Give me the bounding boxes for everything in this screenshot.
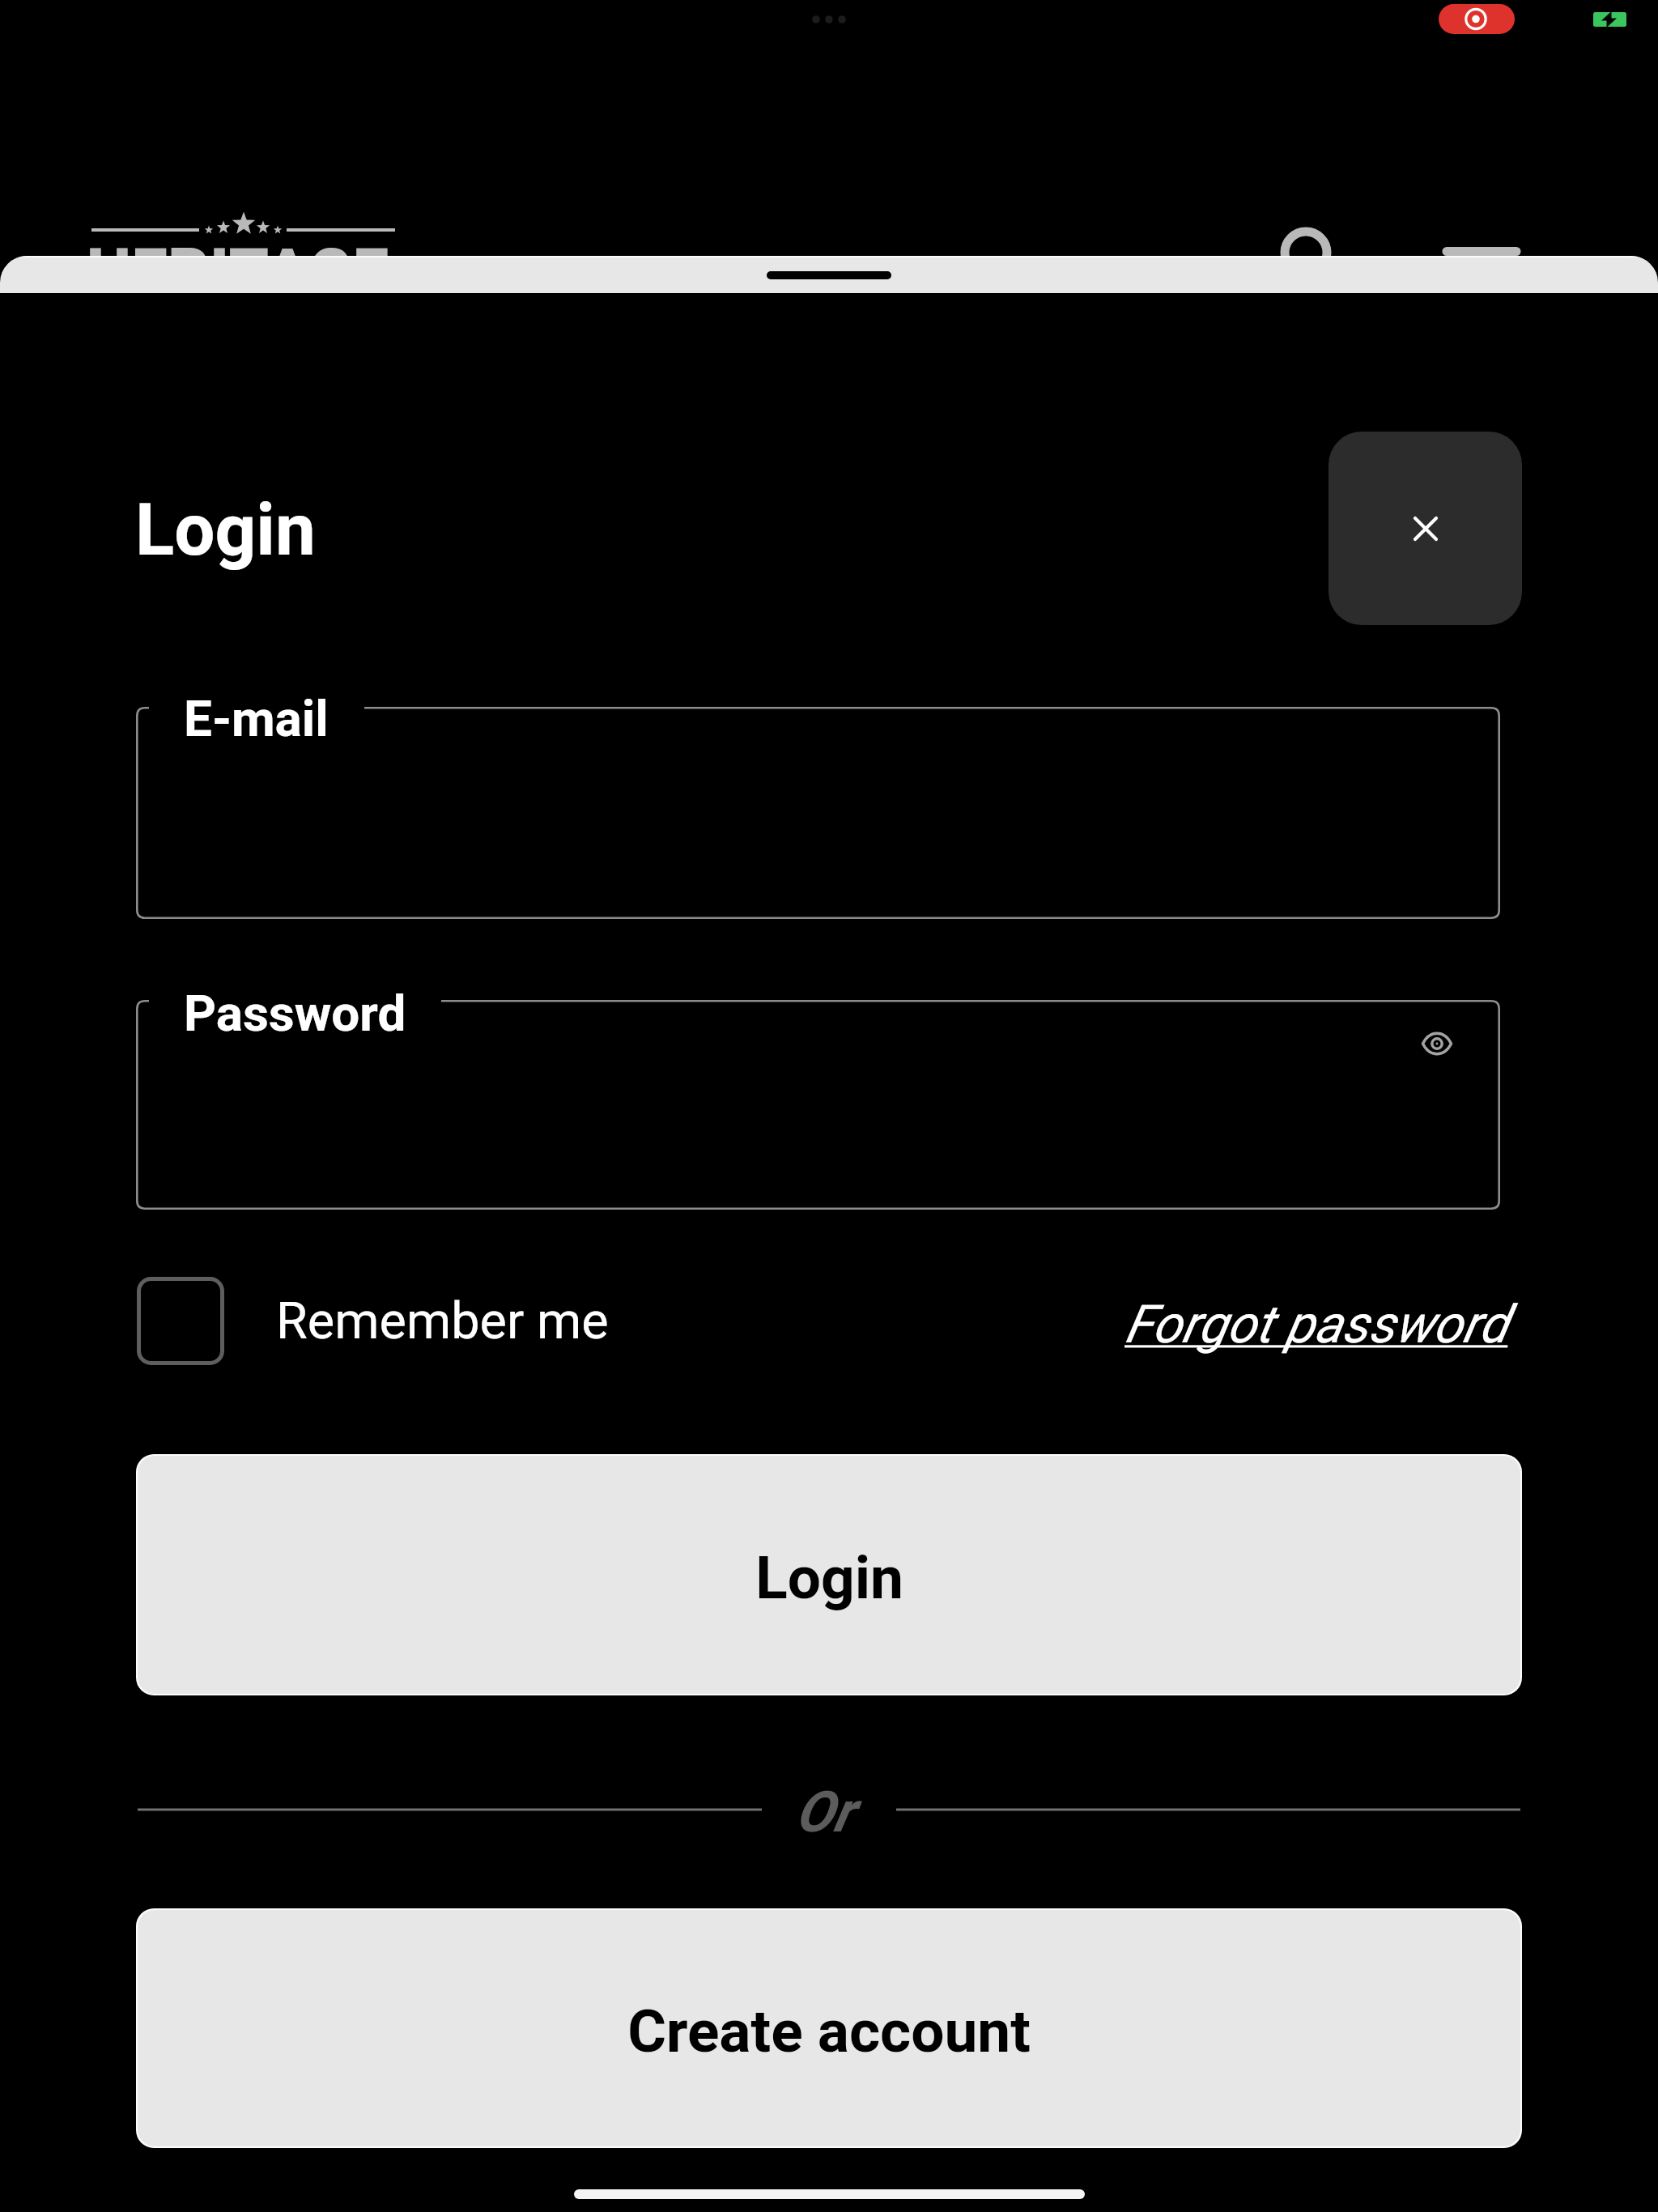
- button[interactable]: [136, 707, 1500, 919]
- button[interactable]: Search: [1265, 212, 1346, 293]
- button[interactable]: Drag handle: [740, 259, 918, 291]
- staticText: Forgot password: [1124, 1294, 1508, 1355]
- staticText: Remember me: [276, 1291, 609, 1351]
- staticText: Or: [795, 1779, 853, 1845]
- button[interactable]: Login: [138, 1456, 1520, 1694]
- staticText: Login: [755, 1543, 903, 1613]
- button[interactable]: Show password: [1403, 1010, 1471, 1078]
- button[interactable]: Show password: [136, 1000, 1500, 1210]
- button[interactable]: Create account: [138, 1910, 1520, 2146]
- button[interactable]: Close: [1329, 432, 1522, 625]
- staticText: E-mail: [184, 689, 329, 748]
- button[interactable]: Forgot password: [1124, 1294, 1508, 1355]
- button[interactable]: Menu: [1438, 188, 1527, 261]
- staticText: Create account: [627, 1997, 1031, 2066]
- button[interactable]: Remember me: [137, 1277, 614, 1368]
- staticText: Login: [135, 487, 316, 572]
- staticText: HERITAGE: [87, 235, 389, 308]
- other: Recording: [1439, 4, 1515, 34]
- staticText: Password: [184, 984, 406, 1043]
